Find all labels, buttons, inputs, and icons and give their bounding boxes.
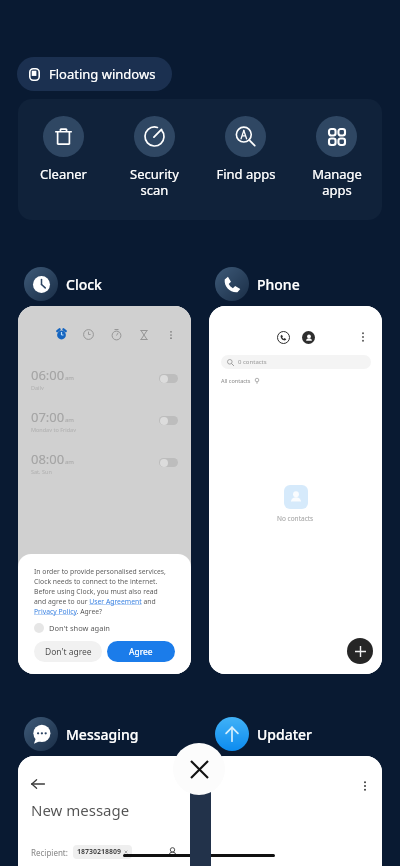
staticText: Manage apps (312, 165, 362, 198)
button[interactable]: Messaging (24, 717, 139, 751)
button[interactable]: Dialer (277, 331, 290, 344)
staticText: Recipient: (31, 847, 68, 858)
button[interactable]: Don't show again (34, 623, 110, 633)
button[interactable]: Back (31, 777, 45, 791)
staticText: No contacts (277, 514, 314, 523)
staticText: 07:00 (31, 408, 65, 426)
staticText: Sat, Sun (31, 468, 52, 474)
button[interactable] (159, 374, 178, 383)
button[interactable]: All contacts (221, 377, 260, 384)
button[interactable]: Find apps (200, 99, 291, 183)
staticText: Phone (257, 275, 300, 294)
button[interactable]: More options (359, 780, 371, 792)
button[interactable]: 0 contacts (221, 355, 371, 369)
button[interactable]: Security scan (109, 99, 200, 198)
button[interactable]: Agree (107, 641, 175, 662)
button[interactable]: More options (209, 756, 382, 866)
button[interactable]: Floating windows (17, 57, 172, 91)
staticText: In order to provide personalised service… (34, 567, 170, 616)
staticText: Cleaner (40, 165, 87, 183)
staticText: 18730218809 (77, 847, 122, 857)
staticText: Updater (257, 725, 313, 744)
button[interactable]: Dialer (209, 306, 382, 674)
button[interactable]: Contacts (302, 331, 315, 344)
button[interactable]: Clock (24, 267, 102, 301)
staticText: 0 contacts (238, 358, 267, 366)
staticText: Monday to Friday (31, 426, 76, 432)
staticText: Security scan (130, 165, 179, 198)
staticText: 06:00 (31, 366, 65, 384)
button[interactable]: Cleaner (18, 99, 109, 183)
button[interactable]: Back (18, 756, 191, 866)
staticText: am (65, 416, 74, 424)
button[interactable]: 06:00 (18, 306, 191, 674)
button[interactable]: Don't agree (34, 641, 102, 662)
staticText: Messaging (66, 725, 139, 744)
staticText: 08:00 (31, 450, 65, 468)
button[interactable]: Close all (173, 743, 225, 795)
button[interactable]: Manage apps (291, 99, 382, 198)
staticText: am (65, 374, 74, 382)
staticText: All contacts (221, 377, 251, 384)
button[interactable]: Add contact (347, 638, 373, 664)
staticText: New message (31, 800, 130, 820)
button[interactable]: Phone (215, 267, 300, 301)
button[interactable]: Pick contact (167, 847, 178, 858)
staticText: am (65, 458, 74, 466)
staticText: Clock (66, 275, 102, 294)
button[interactable] (159, 416, 178, 425)
staticText: Daily (31, 384, 44, 390)
staticText: Don't show again (49, 623, 110, 633)
staticText: Floating windows (49, 65, 156, 83)
staticText: Find apps (216, 165, 276, 183)
button[interactable] (159, 458, 178, 467)
staticText: Don't agree (45, 646, 92, 658)
button[interactable]: Updater (215, 717, 313, 751)
staticText: Agree (129, 646, 153, 658)
